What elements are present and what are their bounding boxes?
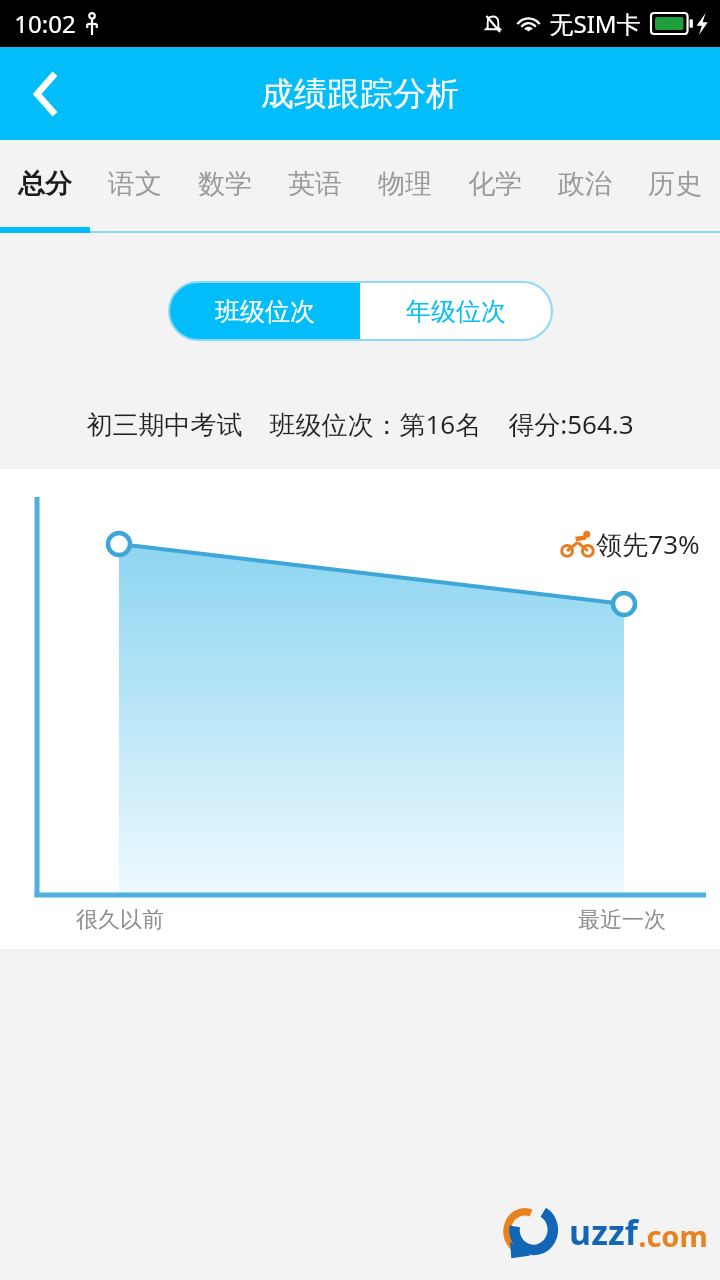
staticText: 总分 (18, 167, 72, 201)
button[interactable]: 英语 (270, 140, 360, 227)
staticText: 英语 (288, 167, 342, 201)
staticText: 年级位次 (406, 296, 506, 327)
staticText: 无SIM卡 (549, 7, 641, 40)
button[interactable]: 总分 (0, 140, 90, 227)
button[interactable]: 数学 (180, 140, 270, 227)
staticText: 物理 (378, 167, 432, 201)
button[interactable]: Back (0, 48, 92, 140)
staticText: 10:02 (14, 7, 76, 40)
staticText: 最近一次 (578, 906, 666, 934)
staticText: .com (638, 1216, 708, 1255)
staticText: uzzf (569, 1209, 638, 1255)
staticText: 初三期中考试 班级位次：第16名 得分:564.3 (86, 406, 634, 442)
button[interactable]: 语文 (90, 140, 180, 227)
staticText: 数学 (198, 167, 252, 201)
staticText: 很久以前 (76, 906, 164, 934)
button[interactable]: 班级位次 (169, 282, 360, 340)
staticText: 成绩跟踪分析 (261, 73, 459, 115)
button[interactable]: 化学 (450, 140, 540, 227)
staticText: 化学 (468, 167, 522, 201)
staticText: 领先73% (596, 526, 700, 562)
button[interactable]: 政治 (540, 140, 630, 227)
button[interactable]: 历史 (630, 140, 720, 227)
staticText: 班级位次 (215, 296, 315, 327)
button[interactable]: 物理 (360, 140, 450, 227)
staticText: 政治 (558, 167, 612, 201)
staticText: 语文 (108, 167, 162, 201)
staticText: 历史 (648, 167, 702, 201)
button[interactable]: 年级位次 (360, 282, 552, 340)
